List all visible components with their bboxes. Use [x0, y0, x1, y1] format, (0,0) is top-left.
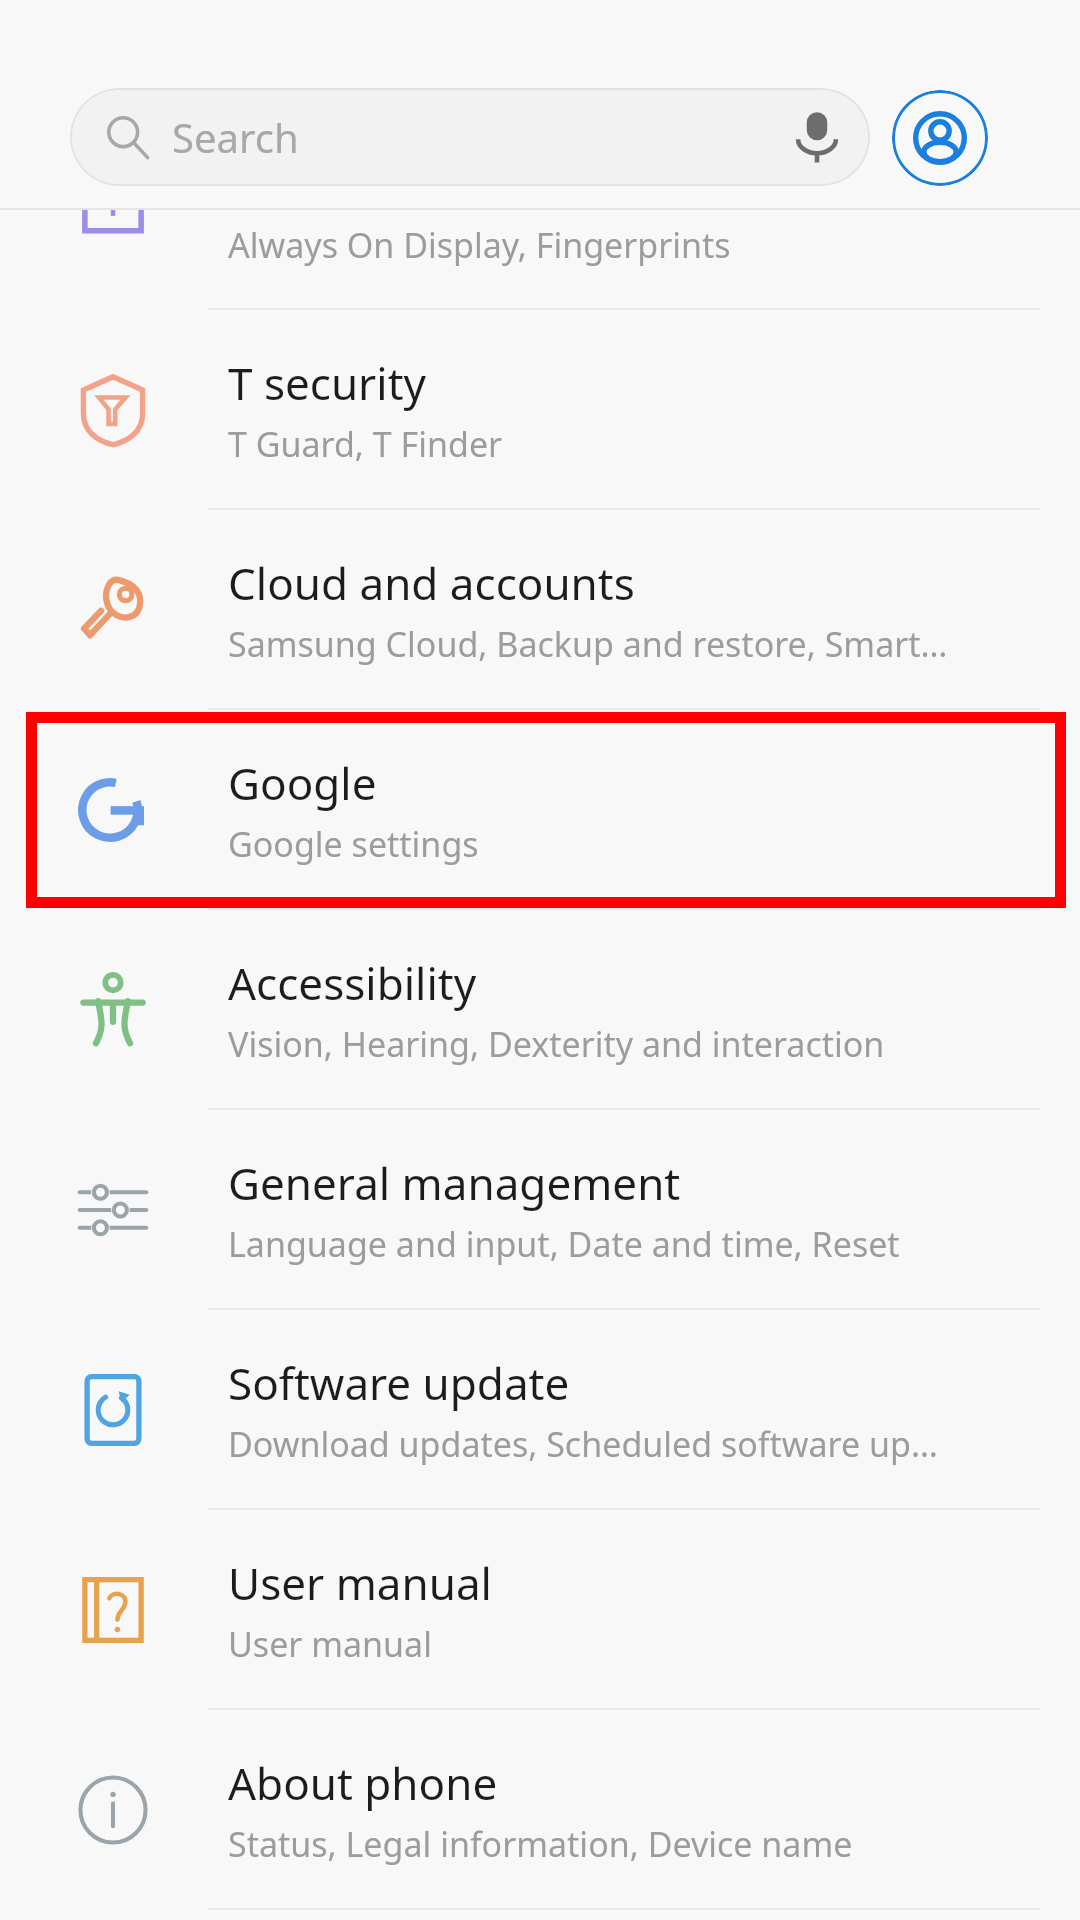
staticText: General management	[228, 1153, 681, 1213]
staticText: Samsung Cloud, Backup and restore, Smart…	[228, 621, 948, 667]
staticText: Cloud and accounts	[228, 553, 635, 613]
button[interactable]: Account	[892, 90, 988, 186]
button[interactable]: Always On Display, Fingerprints	[0, 210, 1080, 310]
staticText: T Guard, T Finder	[228, 421, 503, 467]
staticText: Vision, Hearing, Dexterity and interacti…	[228, 1021, 885, 1067]
staticText: Software update	[228, 1353, 570, 1413]
staticText: Always On Display, Fingerprints	[228, 222, 731, 268]
staticText: Language and input, Date and time, Reset	[228, 1221, 900, 1267]
button[interactable]: About phone	[0, 1710, 1080, 1910]
staticText: Search	[172, 110, 299, 164]
button[interactable]: General management	[0, 1110, 1080, 1310]
button[interactable]: Accessibility	[0, 910, 1080, 1110]
button[interactable]: Google	[0, 710, 1080, 910]
button[interactable]: User manual	[0, 1510, 1080, 1710]
staticText: User manual	[228, 1553, 492, 1613]
button[interactable]: Voice search	[774, 94, 860, 180]
staticText: T security	[228, 353, 426, 413]
staticText: User manual	[228, 1621, 432, 1667]
staticText: Accessibility	[228, 953, 477, 1013]
staticText: About phone	[228, 1753, 498, 1813]
staticText: Google	[228, 753, 377, 813]
button[interactable]: Cloud and accounts	[0, 510, 1080, 710]
button[interactable]: Search	[70, 88, 870, 186]
staticText: Status, Legal information, Device name	[228, 1821, 853, 1867]
staticText: Download updates, Scheduled software up…	[228, 1421, 938, 1467]
button[interactable]: T security	[0, 310, 1080, 510]
staticText: Google settings	[228, 821, 479, 867]
button[interactable]: Software update	[0, 1310, 1080, 1510]
